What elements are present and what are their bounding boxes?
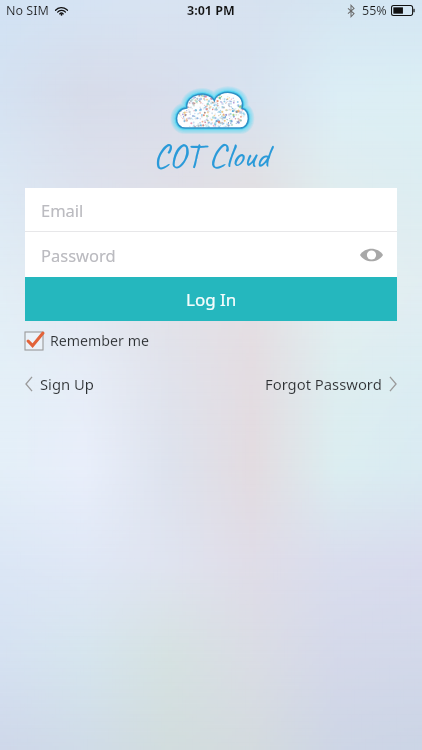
- button[interactable]: Email: [25, 188, 397, 231]
- staticText: 55%: [362, 2, 387, 19]
- staticText: Sign Up: [40, 374, 94, 394]
- staticText: Log In: [186, 288, 237, 311]
- button[interactable]: Show password: [356, 240, 386, 270]
- button[interactable]: Password: [25, 232, 397, 277]
- button[interactable]: Log In: [25, 277, 397, 321]
- staticText: 3:01 PM: [187, 2, 235, 19]
- staticText: No SIM: [6, 2, 49, 19]
- staticText: Password: [41, 244, 116, 266]
- button[interactable]: Sign Up: [25, 374, 94, 394]
- staticText: Remember me: [50, 331, 149, 350]
- staticText: COT Cloud: [153, 134, 270, 177]
- button[interactable]: Forgot Password: [265, 374, 397, 394]
- staticText: Email: [41, 199, 84, 221]
- button[interactable]: Remember me: [25, 331, 149, 350]
- staticText: Forgot Password: [265, 374, 382, 394]
